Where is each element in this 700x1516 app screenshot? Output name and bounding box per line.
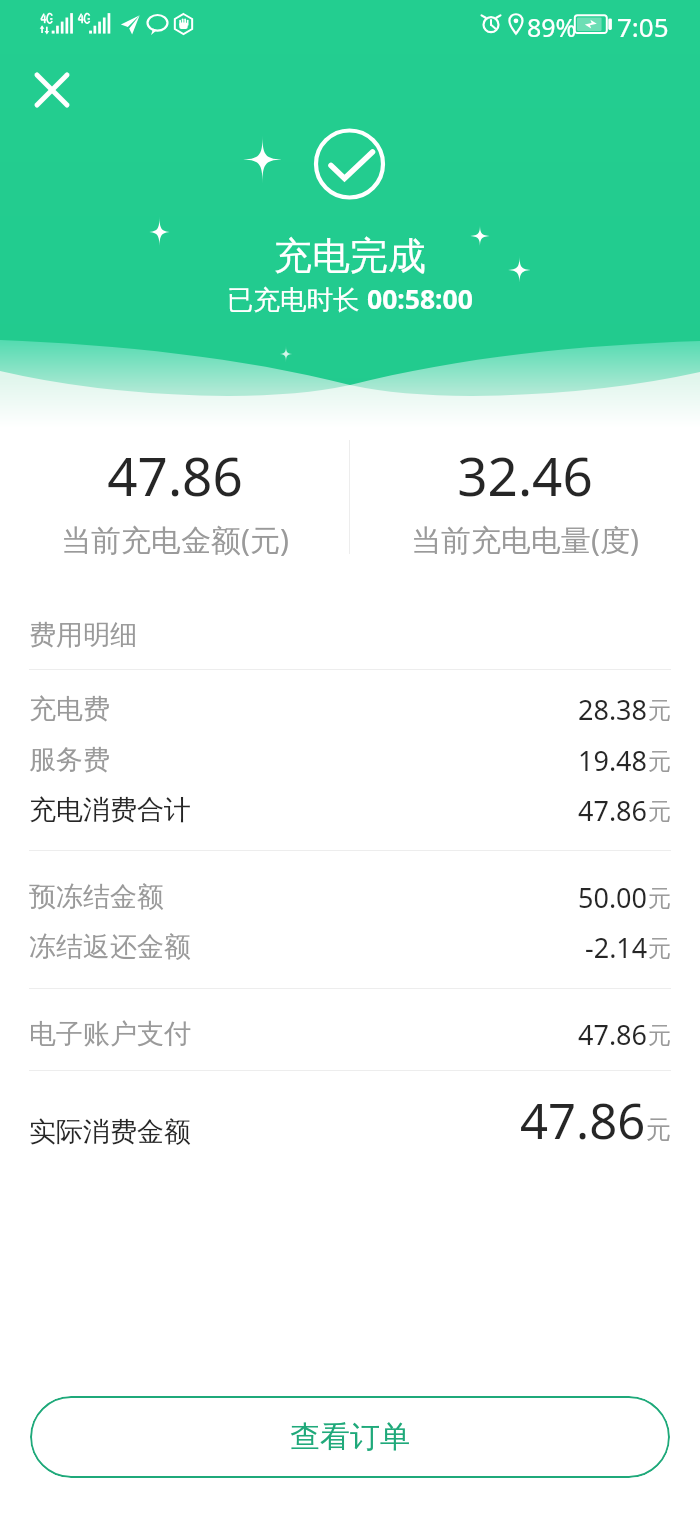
staticText: 充电完成 [274, 232, 426, 280]
staticText: 实际消费金额 [29, 1115, 191, 1149]
staticText: 电子账户支付 [29, 1017, 191, 1051]
button[interactable]: 实际消费金额 [29, 1087, 671, 1147]
staticText: 充电消费合计 [29, 793, 191, 827]
staticText: 元 [648, 747, 671, 776]
button[interactable]: 充电消费合计 [29, 786, 671, 834]
staticText: 当前充电电量(度) [350, 519, 700, 560]
staticText: 47.86 [520, 1087, 646, 1147]
staticText: 50.00 [578, 879, 648, 916]
staticText: 查看订单 [290, 1418, 410, 1456]
staticText: 19.48 [578, 742, 648, 779]
button[interactable]: 充电费 [29, 685, 671, 733]
staticText: -2.14 [585, 929, 648, 966]
staticText: 冻结返还金额 [29, 930, 191, 964]
button[interactable]: 冻结返还金额 [29, 923, 671, 971]
staticText: 32.46 [350, 439, 700, 511]
staticText: 28.38 [578, 691, 648, 728]
staticText: 元 [648, 884, 671, 913]
staticText: 7:05 [617, 9, 669, 44]
staticText: 47.86 [578, 792, 648, 829]
staticText: 元 [648, 797, 671, 826]
button[interactable]: 服务费 [29, 736, 671, 784]
button[interactable]: 预冻结金额 [29, 873, 671, 921]
staticText: 47.86 [578, 1016, 648, 1053]
staticText: 00:58:00 [367, 281, 473, 317]
staticText: 费用明细 [29, 618, 137, 652]
staticText: 元 [646, 1114, 671, 1145]
staticText: 元 [648, 1021, 671, 1050]
staticText: 服务费 [29, 743, 110, 777]
button[interactable]: 电子账户支付 [29, 1010, 671, 1058]
staticText: 充电费 [29, 692, 110, 726]
staticText: 当前充电金额(元) [0, 519, 350, 560]
staticText: 预冻结金额 [29, 880, 164, 914]
staticText: 89% [527, 10, 577, 44]
staticText: 元 [648, 696, 671, 725]
staticText: 47.86 [0, 439, 350, 511]
staticText: 已充电时长 [227, 281, 367, 317]
staticText: 元 [648, 934, 671, 963]
button[interactable]: 查看订单 [30, 1396, 670, 1478]
button[interactable]: Close [28, 66, 76, 114]
